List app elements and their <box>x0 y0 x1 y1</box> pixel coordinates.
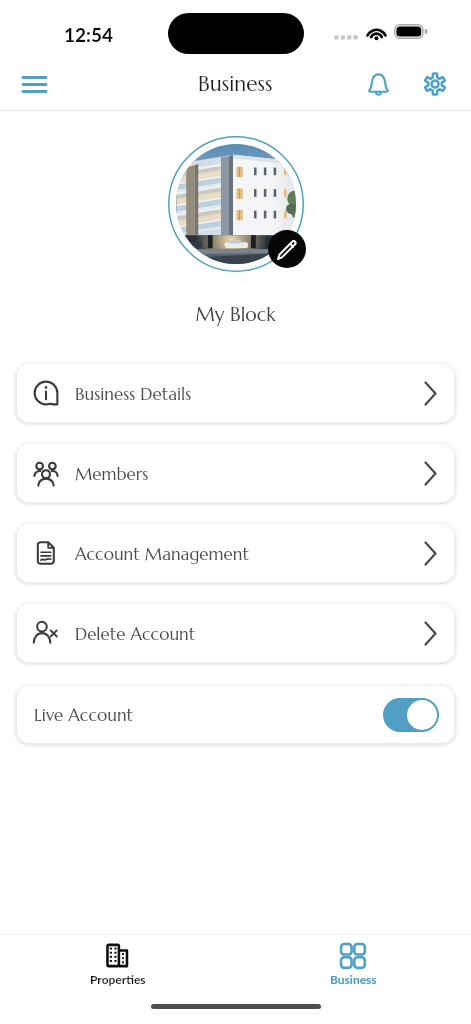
button[interactable]: Edit photo <box>268 230 306 268</box>
button[interactable]: Live Account toggle <box>383 698 439 732</box>
staticText: My Block <box>0 302 471 326</box>
staticText: Business <box>198 71 273 97</box>
button[interactable]: Members <box>17 444 454 502</box>
button[interactable]: Notifications <box>356 62 400 106</box>
button[interactable]: Business Details <box>17 364 454 422</box>
staticText: Account Management <box>75 543 249 564</box>
staticText: Properties <box>90 972 146 986</box>
staticText: 12:54 <box>64 23 113 46</box>
button[interactable]: Business <box>235 935 471 993</box>
staticText: Delete Account <box>75 623 196 644</box>
staticText: Business Details <box>75 383 192 404</box>
staticText: Live Account <box>34 704 134 725</box>
staticText: Business <box>330 972 377 986</box>
button[interactable]: Live Account <box>17 686 454 743</box>
button[interactable]: Properties <box>0 935 235 993</box>
button[interactable]: Menu <box>10 60 58 108</box>
staticText: Members <box>75 463 149 484</box>
button[interactable]: Account Management <box>17 524 454 582</box>
button[interactable]: Settings <box>413 62 457 106</box>
button[interactable]: Delete Account <box>17 604 454 662</box>
